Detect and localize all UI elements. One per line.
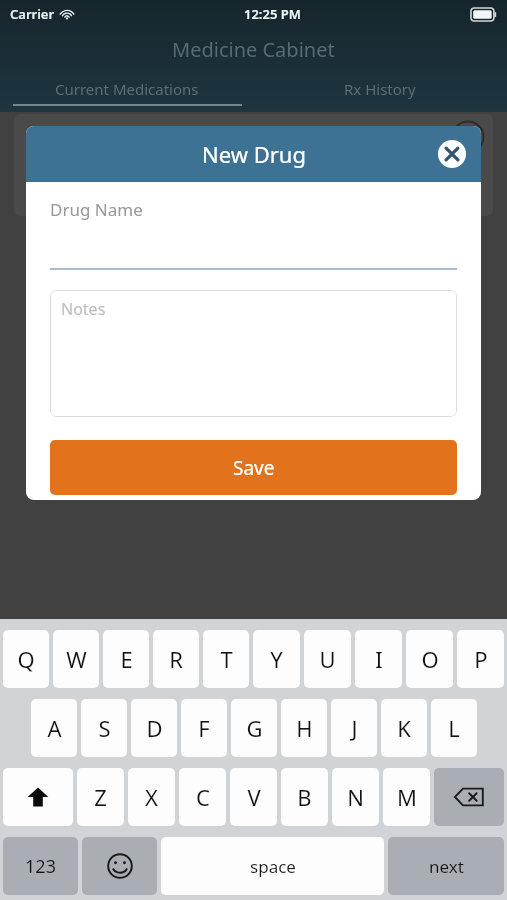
staticText: H — [296, 713, 313, 743]
button[interactable]: A — [31, 699, 77, 757]
staticText: L — [448, 713, 460, 743]
button[interactable]: N — [332, 768, 379, 826]
button[interactable]: next — [388, 837, 504, 895]
staticText: C — [196, 782, 210, 812]
button[interactable]: J — [331, 699, 377, 757]
button[interactable]: S — [81, 699, 127, 757]
button[interactable]: Rx History — [253, 74, 507, 104]
button[interactable]: V — [230, 768, 277, 826]
staticText: F — [198, 713, 210, 743]
staticText: X — [145, 782, 158, 812]
staticText: M — [397, 782, 417, 812]
staticText: Rx History — [344, 79, 416, 99]
button[interactable]: C — [179, 768, 226, 826]
button[interactable]: Drug Name — [50, 198, 457, 270]
button[interactable]: R — [153, 630, 199, 688]
staticText: B — [297, 782, 312, 812]
button[interactable]: Shift — [3, 768, 73, 826]
staticText: Z — [94, 782, 107, 812]
button[interactable]: I — [355, 630, 402, 688]
staticText: T — [220, 644, 233, 674]
button[interactable]: U — [304, 630, 351, 688]
staticText: D — [146, 713, 163, 743]
staticText: Save — [233, 455, 275, 481]
staticText: Medicine Cabinet — [172, 36, 335, 63]
staticText: K — [397, 713, 411, 743]
staticText: S — [98, 713, 111, 743]
button[interactable]: L — [431, 699, 477, 757]
staticText: N — [347, 782, 364, 812]
staticText: I — [375, 644, 383, 674]
button[interactable]: Current Medications — [0, 74, 253, 104]
button[interactable]: Q — [3, 630, 49, 688]
button[interactable]: space — [161, 837, 384, 895]
staticText: Current Medications — [55, 79, 199, 99]
staticText: Carrier — [10, 5, 55, 23]
button[interactable]: M — [383, 768, 430, 826]
button[interactable]: H — [281, 699, 327, 757]
staticText: New Drug — [202, 139, 306, 169]
button[interactable]: B — [281, 768, 328, 826]
staticText: 12:25 PM — [244, 5, 301, 23]
staticText: O — [421, 644, 439, 674]
staticText: V — [247, 782, 261, 812]
staticText: 123 — [25, 854, 56, 879]
staticText: W — [66, 644, 87, 674]
button[interactable]: D — [131, 699, 177, 757]
button[interactable]: 123 — [3, 837, 78, 895]
staticText: E — [120, 644, 133, 674]
staticText: G — [246, 713, 263, 743]
button[interactable]: Z — [77, 768, 124, 826]
staticText: Drug Name — [50, 198, 143, 221]
staticText: U — [319, 644, 336, 674]
button[interactable]: O — [406, 630, 453, 688]
staticText: Q — [17, 644, 35, 674]
button[interactable]: K — [381, 699, 427, 757]
staticText: P — [474, 644, 488, 674]
button[interactable]: Y — [253, 630, 300, 688]
staticText: Notes — [61, 298, 106, 320]
button[interactable]: More options — [451, 120, 485, 154]
button[interactable]: X — [128, 768, 175, 826]
button[interactable]: Backspace — [434, 768, 504, 826]
staticText: A — [47, 713, 62, 743]
staticText: space — [250, 855, 296, 878]
button[interactable]: More options — [14, 114, 493, 216]
button[interactable]: T — [203, 630, 249, 688]
button[interactable]: P — [457, 630, 504, 688]
staticText: Y — [270, 644, 283, 674]
staticText: R — [169, 644, 183, 674]
button[interactable]: Close — [437, 139, 467, 169]
button[interactable]: G — [231, 699, 277, 757]
staticText: J — [351, 713, 358, 743]
button[interactable]: Emoji — [82, 837, 157, 895]
button[interactable]: Save — [50, 440, 457, 495]
staticText: next — [429, 855, 464, 878]
button[interactable]: Notes — [50, 290, 457, 417]
button[interactable]: E — [103, 630, 149, 688]
button[interactable]: W — [53, 630, 99, 688]
button[interactable]: F — [181, 699, 227, 757]
